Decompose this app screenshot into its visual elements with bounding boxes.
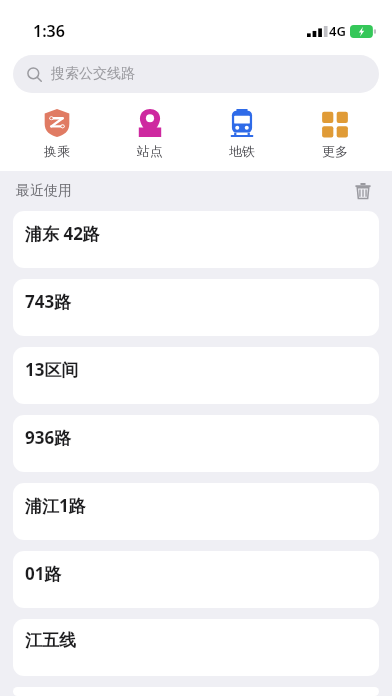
staticText: 换乘 <box>44 143 70 159</box>
button[interactable]: 江五线 <box>13 619 379 676</box>
staticText: 743路 <box>25 290 72 313</box>
button[interactable]: 站点 <box>115 107 185 161</box>
staticText: 1:36 <box>33 20 65 42</box>
button[interactable]: 13区间 <box>13 347 379 404</box>
staticText: 江五线 <box>25 630 76 651</box>
staticText: 936路 <box>25 426 72 449</box>
staticText: 浦东 42路 <box>25 222 100 245</box>
button[interactable]: 更多 <box>300 107 370 161</box>
button[interactable]: 浦东 42路 <box>13 211 379 268</box>
button[interactable]: 清空最近使用 <box>346 174 380 208</box>
staticText: 浦江1路 <box>25 494 86 517</box>
button[interactable]: 743路 <box>13 279 379 336</box>
button[interactable]: 地铁 <box>207 107 277 161</box>
button[interactable]: 936路 <box>13 415 379 472</box>
button[interactable]: 换乘 <box>22 107 92 161</box>
button[interactable]: 01路 <box>13 551 379 608</box>
button[interactable]: 搜索公交线路 <box>13 55 379 93</box>
staticText: 01路 <box>25 562 62 585</box>
staticText: 搜索公交线路 <box>51 65 135 83</box>
staticText: 地铁 <box>229 143 255 159</box>
staticText: 更多 <box>322 143 348 159</box>
button[interactable]: 浦江1路 <box>13 483 379 540</box>
staticText: 13区间 <box>25 358 79 381</box>
staticText: 站点 <box>137 143 163 159</box>
staticText: 4G <box>329 22 346 40</box>
staticText: 最近使用 <box>16 182 72 200</box>
